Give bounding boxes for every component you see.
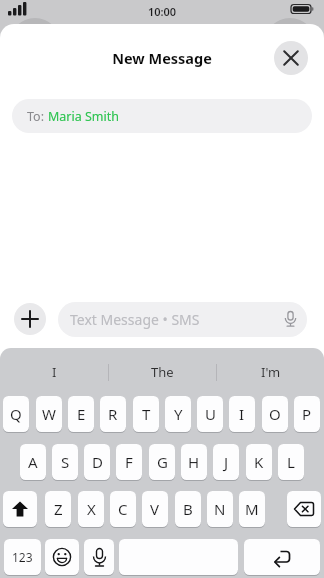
button[interactable]: C	[110, 491, 136, 527]
button[interactable]: I'm	[217, 348, 324, 396]
button[interactable]: G	[149, 444, 175, 480]
button[interactable]: Y	[165, 396, 191, 432]
button[interactable]	[14, 303, 46, 335]
button[interactable]	[274, 41, 308, 75]
button[interactable]: K	[246, 444, 272, 480]
staticText: B	[183, 499, 193, 519]
button[interactable]: To:	[12, 99, 312, 133]
staticText: A	[28, 452, 38, 472]
staticText: 10:00	[0, 4, 324, 19]
staticText: M	[245, 499, 259, 519]
button[interactable]: V	[142, 491, 168, 527]
staticText: O	[269, 404, 281, 424]
staticText: U	[205, 404, 216, 424]
staticText: P	[302, 404, 312, 424]
staticText: G	[157, 452, 168, 472]
staticText: V	[150, 499, 160, 519]
staticText: E	[77, 404, 86, 424]
staticText: K	[254, 452, 264, 472]
staticText: S	[61, 452, 70, 472]
button[interactable]: A	[20, 444, 46, 480]
button[interactable]	[119, 539, 238, 575]
staticText: Maria Smith	[48, 108, 120, 125]
staticText: R	[108, 404, 118, 424]
button[interactable]: O	[262, 396, 288, 432]
button[interactable]: I	[0, 348, 108, 396]
staticText: 123	[12, 549, 33, 565]
staticText: W	[42, 404, 56, 424]
staticText: I	[239, 404, 245, 424]
button[interactable]	[3, 491, 37, 527]
button[interactable]	[45, 539, 79, 575]
button[interactable]: B	[175, 491, 201, 527]
staticText: I'm	[261, 363, 281, 381]
button[interactable]: R	[100, 396, 126, 432]
button[interactable]: 123	[4, 539, 41, 575]
staticText: The	[151, 363, 174, 381]
staticText: C	[118, 499, 128, 519]
staticText: N	[214, 499, 226, 519]
staticText: L	[287, 452, 295, 472]
button[interactable]: L	[278, 444, 304, 480]
button[interactable]: S	[52, 444, 78, 480]
button[interactable]: Z	[45, 491, 71, 527]
button[interactable]: D	[84, 444, 110, 480]
button[interactable]: The	[109, 348, 216, 396]
staticText: D	[92, 452, 103, 472]
button[interactable]: X	[78, 491, 104, 527]
staticText: New Message	[0, 48, 324, 68]
button[interactable]	[84, 539, 114, 575]
button[interactable]: H	[181, 444, 207, 480]
button[interactable]: N	[207, 491, 233, 527]
button[interactable]: W	[36, 396, 62, 432]
staticText: Y	[174, 404, 183, 424]
button[interactable]: U	[197, 396, 223, 432]
button[interactable]: P	[294, 396, 320, 432]
button[interactable]: J	[213, 444, 239, 480]
button[interactable]	[287, 491, 321, 527]
button[interactable]: F	[116, 444, 142, 480]
button[interactable]: T	[133, 396, 159, 432]
staticText: T	[142, 404, 151, 424]
staticText: Text Message • SMS	[70, 310, 200, 329]
staticText: To:	[27, 108, 48, 125]
staticText: I	[52, 363, 57, 381]
staticText: H	[188, 452, 200, 472]
staticText: Q	[10, 404, 22, 424]
staticText: Z	[54, 499, 63, 519]
staticText: J	[224, 452, 229, 472]
button[interactable]: M	[239, 491, 265, 527]
button[interactable]: Q	[3, 396, 29, 432]
button[interactable]: E	[68, 396, 94, 432]
button[interactable]: I	[229, 396, 255, 432]
button[interactable]	[244, 539, 320, 575]
staticText: X	[87, 499, 96, 519]
staticText: F	[125, 452, 133, 472]
button[interactable]: Text Message • SMS	[58, 302, 307, 337]
